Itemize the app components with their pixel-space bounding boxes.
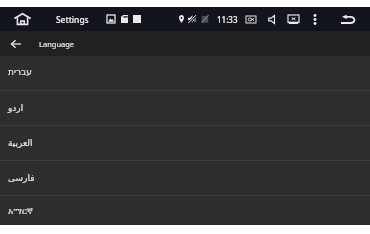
staticText: Settings bbox=[56, 14, 89, 25]
staticText: العربية bbox=[8, 138, 33, 148]
button[interactable]: اردو bbox=[0, 91, 370, 126]
staticText: فارسی bbox=[8, 173, 35, 183]
button[interactable]: עברית bbox=[0, 56, 370, 91]
staticText: اردو bbox=[8, 103, 24, 113]
button[interactable]: አማርኛ bbox=[0, 196, 370, 225]
button[interactable]: Home bbox=[14, 13, 31, 25]
staticText: Language bbox=[39, 39, 75, 49]
button[interactable]: More options bbox=[312, 14, 318, 25]
button[interactable]: Back bbox=[340, 14, 356, 25]
button[interactable]: فارسی bbox=[0, 161, 370, 196]
staticText: 11:33 bbox=[217, 14, 238, 25]
button[interactable]: Navigate up bbox=[11, 40, 21, 48]
staticText: עברית bbox=[8, 67, 32, 77]
button[interactable]: العربية bbox=[0, 126, 370, 161]
staticText: አማርኛ bbox=[8, 207, 33, 216]
